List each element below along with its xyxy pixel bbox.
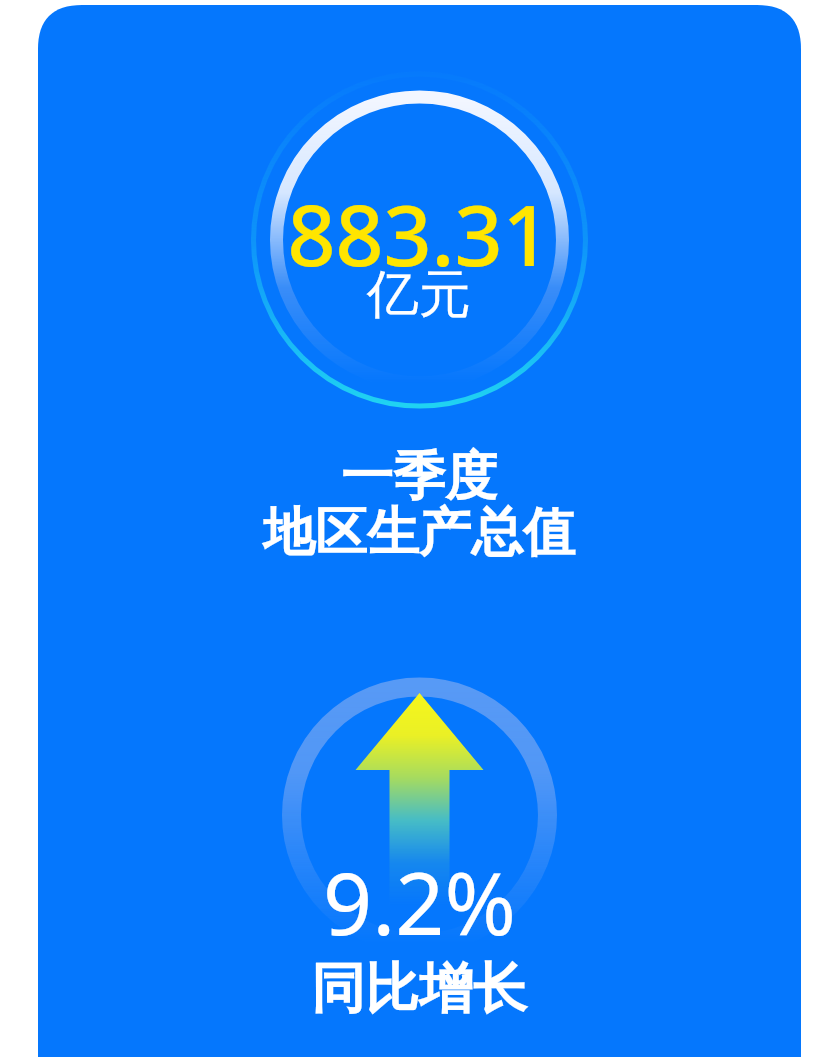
staticText: 亿元	[367, 262, 471, 328]
staticText: 883.31	[287, 176, 551, 290]
staticText: 一季度 地区生产总值	[263, 444, 575, 565]
staticText: 同比增长	[311, 955, 527, 1023]
button[interactable]: 一季度地区生产总值 883.31 亿元，同比增长 9.2%	[0, 0, 839, 1057]
staticText: 9.2%	[323, 843, 516, 960]
